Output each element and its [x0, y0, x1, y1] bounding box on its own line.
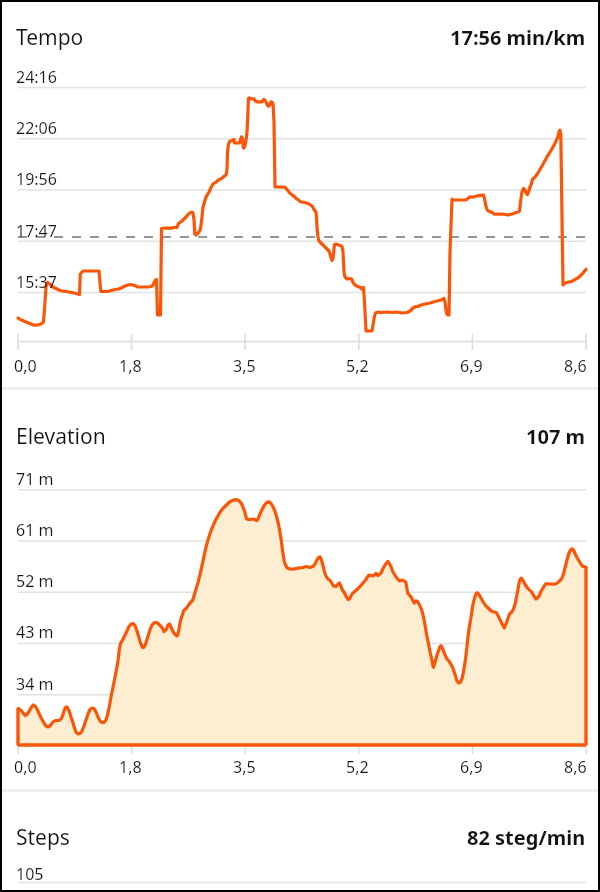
staticText: 3,5	[233, 355, 256, 377]
button[interactable]: Elevation	[16, 422, 586, 451]
staticText: 61 m	[16, 519, 54, 541]
staticText: Steps	[16, 823, 70, 852]
staticText: 52 m	[16, 570, 54, 592]
staticText: 8,6	[564, 756, 587, 778]
staticText: 5,2	[346, 355, 369, 377]
staticText: 0,0	[14, 355, 37, 377]
staticText: 105	[16, 863, 44, 885]
staticText: 6,9	[460, 756, 483, 778]
staticText: 43 m	[16, 621, 54, 643]
staticText: 22:06	[16, 117, 57, 139]
staticText: 17:56 min/km	[450, 24, 586, 51]
staticText: Tempo	[16, 23, 84, 52]
staticText: 17:47	[16, 220, 57, 242]
staticText: 3,5	[233, 756, 256, 778]
staticText: 107 m	[526, 423, 586, 450]
staticText: 1,8	[119, 756, 142, 778]
button[interactable]: Steps	[16, 823, 586, 852]
staticText: 5,2	[346, 756, 369, 778]
staticText: 82 steg/min	[467, 824, 586, 851]
staticText: 8,6	[564, 355, 587, 377]
staticText: 6,9	[460, 355, 483, 377]
staticText: 34 m	[16, 673, 54, 695]
staticText: 1,8	[119, 355, 142, 377]
staticText: 15:37	[16, 271, 57, 293]
staticText: Elevation	[16, 422, 106, 451]
staticText: 24:16	[16, 66, 57, 88]
staticText: 0,0	[14, 756, 37, 778]
button[interactable]: Tempo	[16, 23, 586, 52]
staticText: 71 m	[16, 468, 54, 490]
staticText: 19:56	[16, 168, 57, 190]
